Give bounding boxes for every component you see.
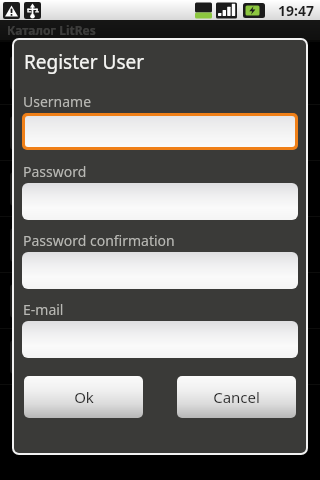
button[interactable]: Text field <box>22 252 298 289</box>
button[interactable]: Горячие новинки <box>0 42 320 104</box>
staticText: Register User <box>24 49 145 75</box>
staticText: Ok <box>74 387 94 407</box>
staticText: Username <box>23 92 92 111</box>
staticText: Password <box>23 162 87 181</box>
staticText: Cancel <box>213 387 260 407</box>
button[interactable]: 50 самых популярных книг <box>0 105 320 160</box>
button[interactable]: Ok <box>24 376 143 418</box>
staticText: Refill account <box>54 345 170 368</box>
staticText: Мои книги <box>54 289 150 312</box>
button[interactable]: Refill account <box>0 329 320 384</box>
staticText: Каталог LitRes <box>7 22 96 38</box>
button[interactable]: Text field <box>22 183 298 220</box>
staticText: Горячие новинки <box>54 51 208 74</box>
staticText: Просмотр книг по авторам <box>54 177 292 200</box>
staticText: 19:47 <box>278 1 314 20</box>
staticText: Password confirmation <box>23 231 175 250</box>
staticText: 50 самых популярных книг <box>54 121 295 144</box>
button[interactable]: Text field <box>22 321 298 358</box>
button[interactable]: Cancel <box>177 376 296 418</box>
staticText: E-mail <box>23 300 64 319</box>
button[interactable]: Мои книги <box>0 273 320 328</box>
staticText: Поиск книг <box>54 233 154 256</box>
button[interactable]: Text field <box>22 113 298 150</box>
button[interactable]: Поиск книг <box>0 217 320 272</box>
button[interactable]: Просмотр книг по авторам <box>0 161 320 216</box>
